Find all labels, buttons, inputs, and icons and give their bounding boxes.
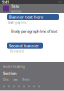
staticText: Small gray line (8, 21, 27, 24)
staticText: Body paragraph line of text (11, 28, 57, 34)
staticText: Title (11, 4, 19, 9)
staticText: 9:41 (2, 0, 9, 5)
staticText: Delivered (10, 50, 24, 53)
staticText: ···· (58, 0, 62, 5)
staticText: Subtitle (11, 10, 22, 13)
staticText: Two (13, 78, 18, 81)
staticText: Banner text here (9, 14, 43, 20)
staticText: Footer heading (3, 65, 25, 68)
staticText: Section (3, 70, 17, 76)
staticText: Second banner (9, 43, 39, 48)
staticText: Three (22, 78, 30, 81)
staticText: One (3, 78, 9, 81)
